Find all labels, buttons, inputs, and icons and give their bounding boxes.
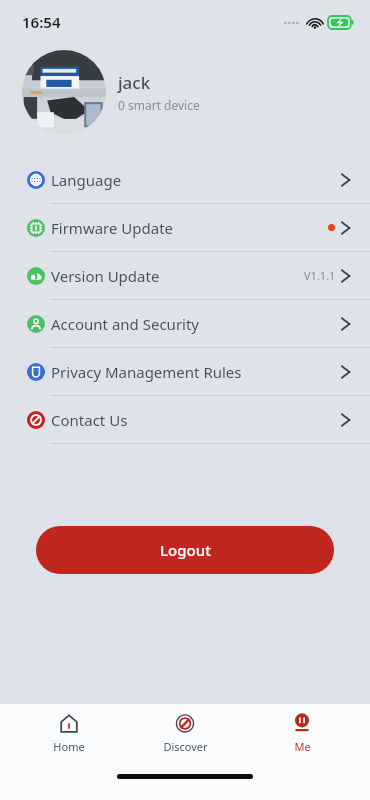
staticText: Language — [51, 170, 122, 190]
staticText: Firmware Update — [51, 218, 174, 238]
staticText: Version Update — [51, 266, 160, 286]
staticText: Me — [294, 739, 311, 754]
staticText: Logout — [160, 540, 211, 560]
button[interactable]: Account and Security — [0, 300, 370, 347]
staticText: Privacy Management Rules — [51, 362, 242, 382]
button[interactable]: Firmware Update — [0, 204, 370, 251]
staticText: 0 smart device — [118, 97, 200, 113]
staticText: Contact Us — [51, 410, 128, 430]
staticText: Discover — [163, 739, 208, 754]
button[interactable]: Version Update — [0, 252, 370, 299]
staticText: Account and Security — [51, 314, 200, 334]
button[interactable]: Contact Us — [0, 396, 370, 443]
staticText: Home — [53, 739, 85, 754]
button[interactable]: Me — [254, 711, 350, 754]
staticText: 16:54 — [22, 12, 61, 32]
button[interactable]: Language — [0, 156, 370, 203]
staticText: jack — [118, 71, 151, 94]
button[interactable]: Home — [21, 711, 117, 754]
staticText: V1.1.1 — [304, 268, 336, 283]
button[interactable]: Discover — [137, 711, 233, 754]
button[interactable]: jack — [0, 44, 370, 140]
button[interactable]: Logout — [36, 526, 334, 574]
button[interactable]: Privacy Management Rules — [0, 348, 370, 395]
